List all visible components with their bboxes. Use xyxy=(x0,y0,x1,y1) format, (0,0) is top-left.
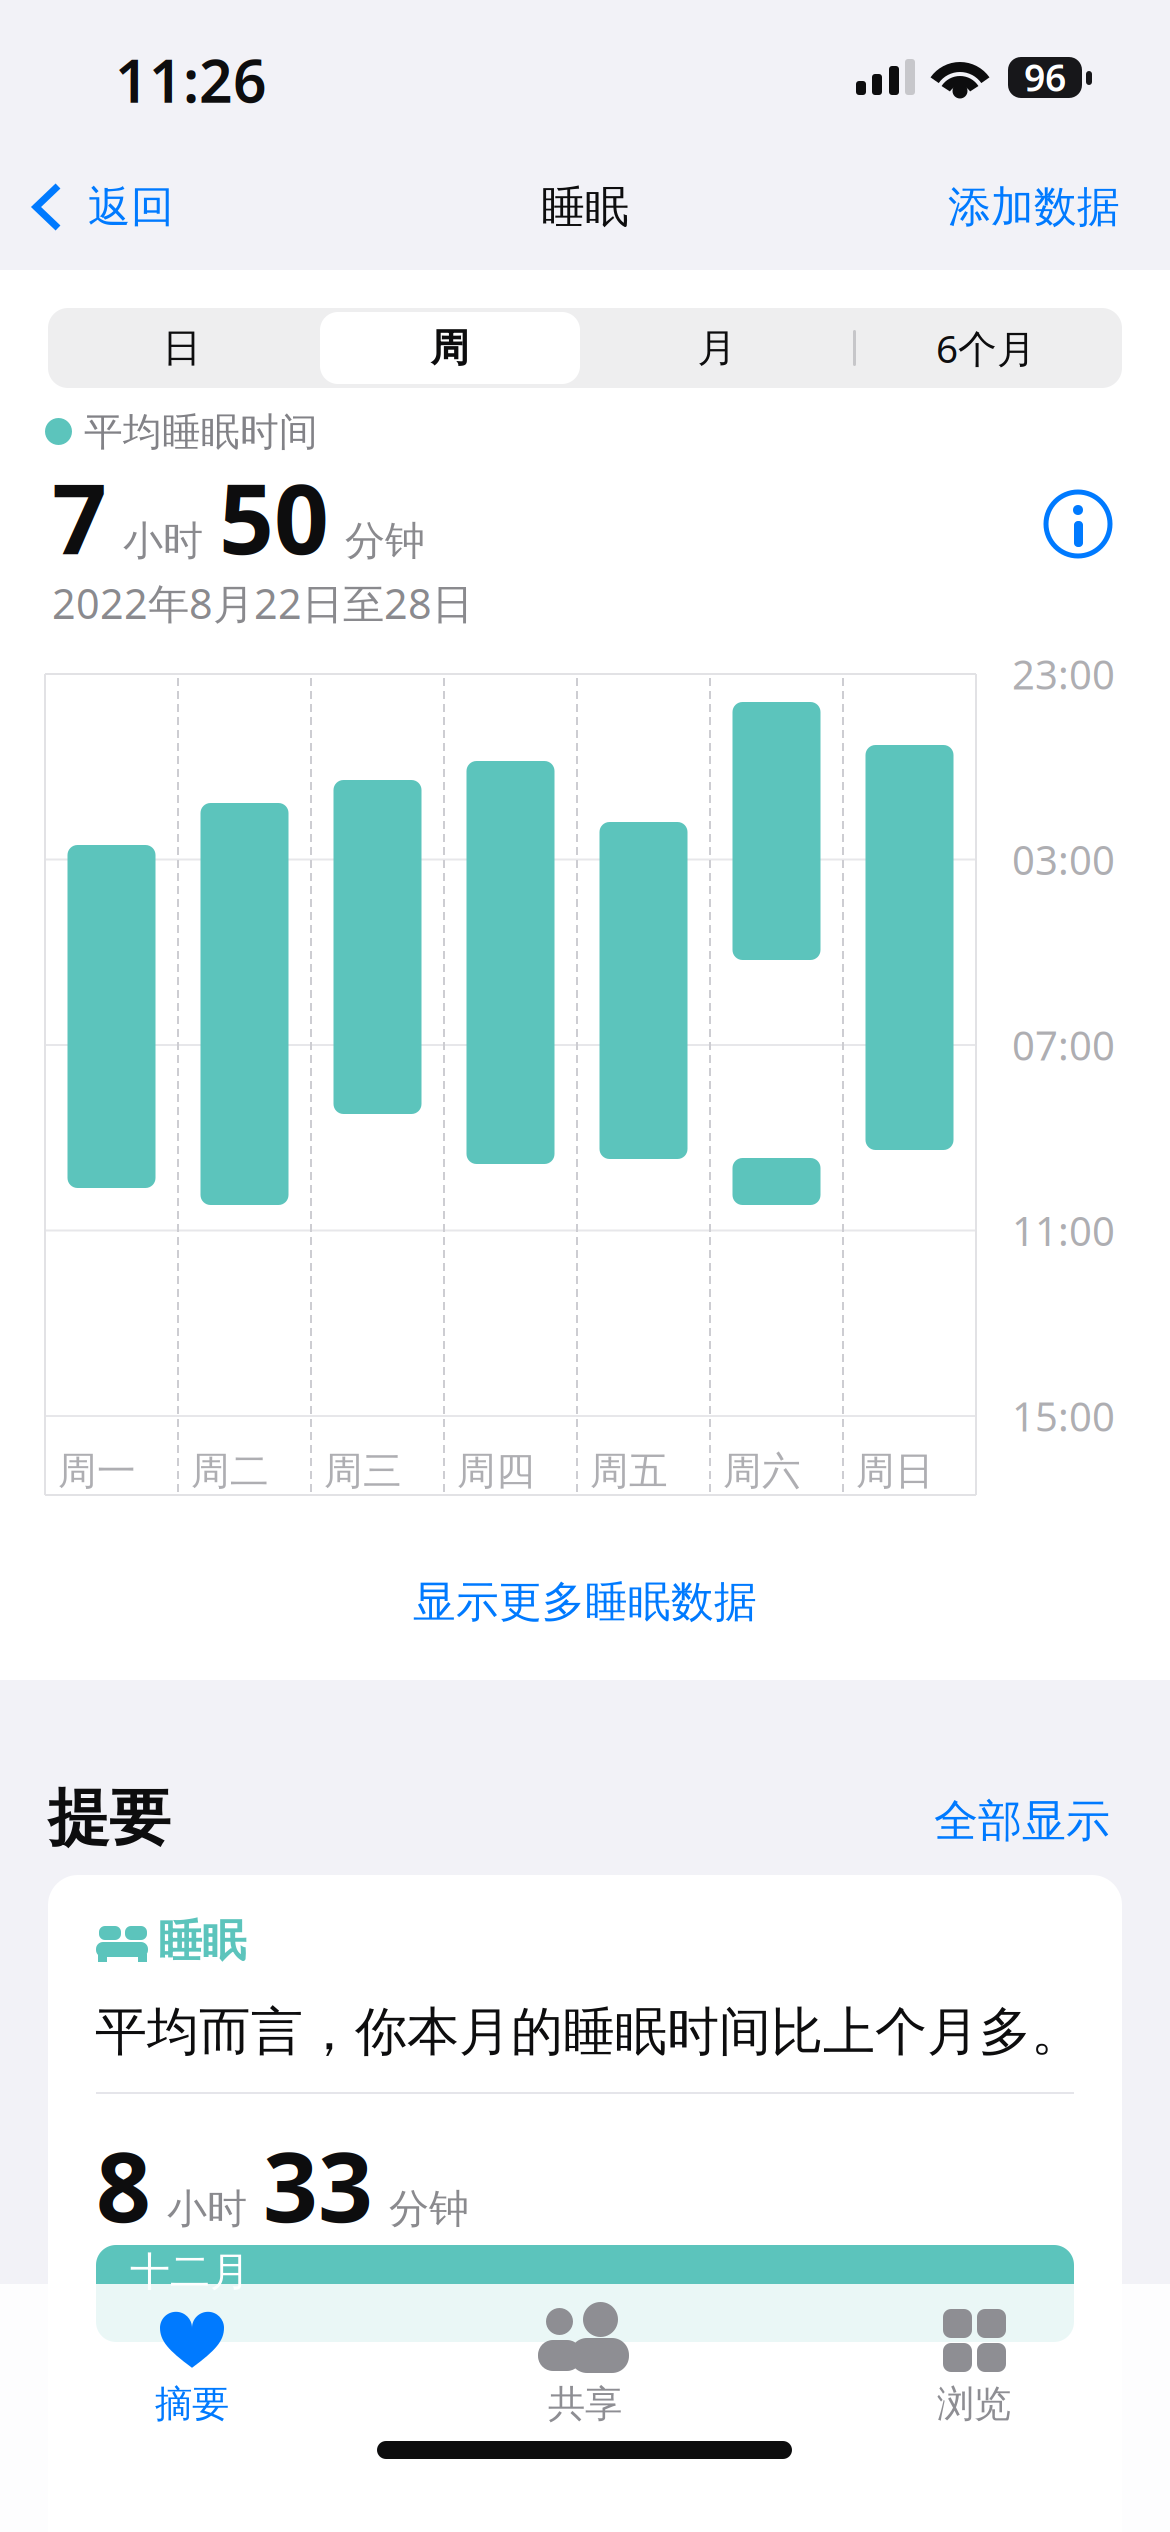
button[interactable]: 添加数据 xyxy=(820,179,1120,235)
staticText: 平均而言，你本月的睡眠时间比上个月多。 xyxy=(95,2000,1083,2064)
staticText: 月 xyxy=(697,324,736,372)
staticText: 11:00 xyxy=(1012,1204,1115,1257)
staticText: 小时 xyxy=(167,2184,247,2233)
staticText: 共享 xyxy=(548,2381,622,2427)
staticText: 96 xyxy=(1024,52,1066,102)
staticText: 小时 xyxy=(123,516,203,565)
button[interactable]: 浏览 xyxy=(780,2284,1170,2460)
staticText: 提要 xyxy=(48,1780,170,1856)
staticText: 周二 xyxy=(191,1447,269,1495)
button[interactable]: 共享 xyxy=(390,2284,780,2460)
staticText: 6个月 xyxy=(936,322,1036,374)
staticText: 11:26 xyxy=(115,41,267,119)
button[interactable]: 全部显示 xyxy=(810,1791,1110,1851)
staticText: 07:00 xyxy=(1012,1018,1115,1071)
staticText: 33 xyxy=(263,2121,373,2249)
staticText: 平均睡眠时间 xyxy=(84,408,318,456)
button[interactable]: 周 xyxy=(321,308,579,388)
staticText: 摘要 xyxy=(155,2381,229,2427)
staticText: 显示更多睡眠数据 xyxy=(413,1576,757,1628)
staticText: 周 xyxy=(430,324,469,372)
button[interactable]: 返回 xyxy=(30,182,200,232)
staticText: 7 xyxy=(52,453,107,581)
staticText: 浏览 xyxy=(937,2381,1011,2427)
button[interactable]: 6个月 xyxy=(856,308,1116,388)
staticText: 03:00 xyxy=(1012,833,1115,886)
staticText: 周五 xyxy=(590,1447,668,1495)
staticText: 添加数据 xyxy=(948,181,1120,233)
staticText: 睡眠 xyxy=(158,1914,246,1968)
button[interactable]: 信息 xyxy=(1040,486,1116,562)
staticText: 50 xyxy=(219,453,329,581)
staticText: 8 xyxy=(96,2121,151,2249)
staticText: 周日 xyxy=(856,1447,934,1495)
button[interactable]: 显示更多睡眠数据 xyxy=(335,1567,835,1637)
staticText: 23:00 xyxy=(1012,647,1115,700)
staticText: 分钟 xyxy=(389,2184,469,2233)
staticText: 周六 xyxy=(723,1447,801,1495)
staticText: 日 xyxy=(162,324,201,372)
staticText: 睡眠 xyxy=(541,180,629,234)
staticText: 返回 xyxy=(88,181,174,233)
staticText: 15:00 xyxy=(1012,1389,1115,1442)
staticText: 周四 xyxy=(457,1447,535,1495)
staticText: 十二月 xyxy=(130,2247,250,2296)
staticText: 全部显示 xyxy=(934,1794,1110,1848)
staticText: 2022年8月22日至28日 xyxy=(52,576,473,630)
staticText: 周一 xyxy=(58,1447,136,1495)
staticText: 分钟 xyxy=(345,516,425,565)
button[interactable]: 睡眠摘要 xyxy=(48,1875,1122,2532)
button[interactable]: 日 xyxy=(52,308,312,388)
button[interactable]: 月 xyxy=(587,308,847,388)
button[interactable]: 摘要 xyxy=(0,2284,390,2460)
staticText: 周三 xyxy=(324,1447,402,1495)
